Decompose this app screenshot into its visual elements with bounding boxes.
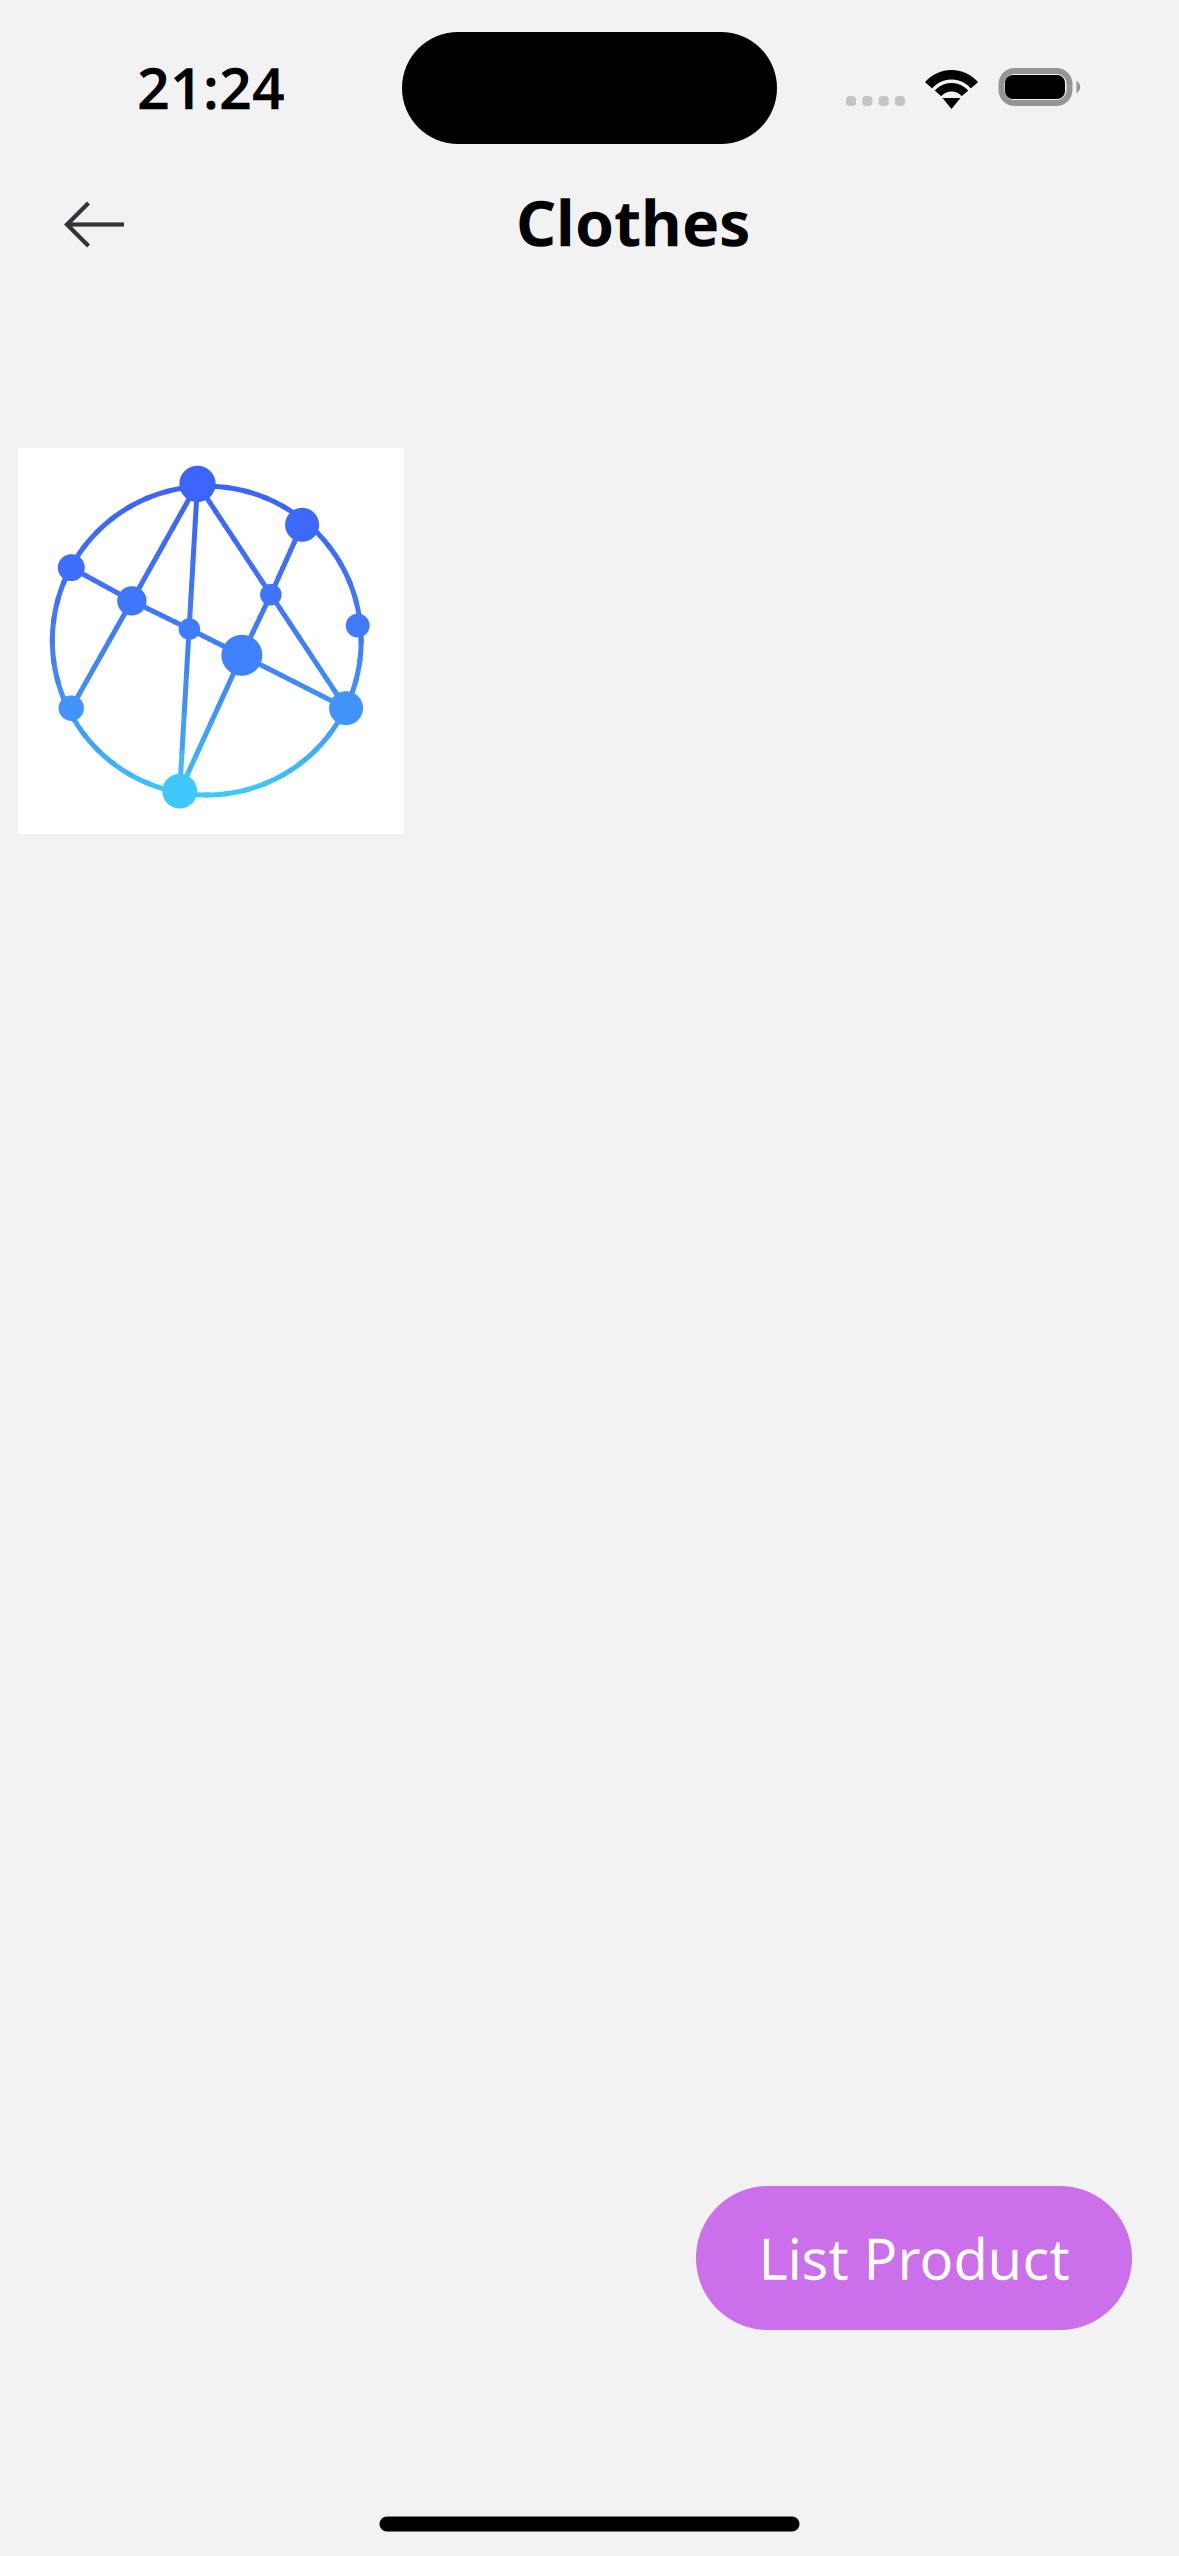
button[interactable]: Back xyxy=(25,160,165,288)
staticText: 21:24 xyxy=(137,49,285,125)
button[interactable]: Product photo xyxy=(18,448,404,834)
button[interactable]: List Product xyxy=(696,2186,1132,2330)
staticText: Clothes xyxy=(516,180,750,264)
staticText: List Product xyxy=(758,2221,1069,2295)
